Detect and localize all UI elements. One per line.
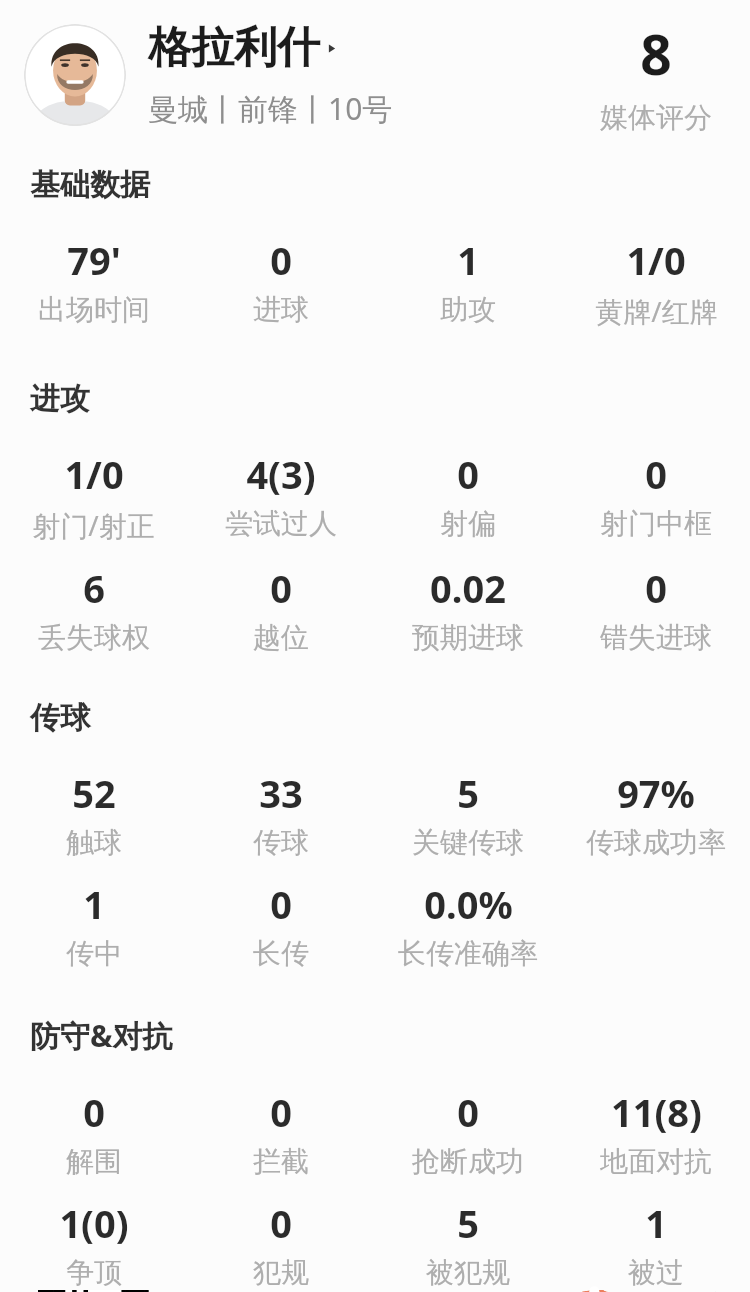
staticText: 射门/射正 xyxy=(32,506,155,544)
button[interactable]: 0 xyxy=(187,562,374,655)
button[interactable]: 4(3) xyxy=(187,448,374,541)
staticText: 错失进球 xyxy=(600,620,712,655)
staticText: 1 xyxy=(645,1197,667,1249)
staticText: 传中 xyxy=(66,936,122,971)
button[interactable]: 球8体育 QIUBATIYU.NET xyxy=(578,1290,734,1292)
button[interactable]: 0 xyxy=(187,1197,374,1290)
button[interactable]: 52 xyxy=(0,767,187,860)
button[interactable]: 1 xyxy=(0,878,187,971)
staticText: 进攻 xyxy=(30,380,90,418)
button[interactable]: Player photo xyxy=(24,24,126,126)
staticText: 1 xyxy=(457,234,479,286)
staticText: 11(8) xyxy=(611,1086,702,1138)
button[interactable]: 97% xyxy=(562,767,750,860)
staticText: 射偏 xyxy=(440,506,496,541)
staticText: 争顶 xyxy=(66,1255,122,1290)
staticText: 预期进球 xyxy=(412,620,524,655)
staticText: 传球 xyxy=(30,699,90,737)
staticText: 出场时间 xyxy=(38,292,150,327)
staticText: 媒体评分 xyxy=(600,100,712,135)
button[interactable]: 0 xyxy=(374,448,562,541)
button[interactable]: 5 xyxy=(374,767,562,860)
button[interactable]: 1(0) xyxy=(0,1197,187,1290)
staticText: 5 xyxy=(457,1197,479,1249)
button[interactable]: 5 xyxy=(374,1197,562,1290)
button[interactable]: 0 xyxy=(187,234,374,327)
button[interactable]: 33 xyxy=(187,767,374,860)
staticText: 1 xyxy=(83,878,105,930)
staticText: 被过 xyxy=(628,1255,684,1290)
staticText: 传球成功率 xyxy=(586,825,726,860)
staticText: 0 xyxy=(457,1086,479,1138)
staticText: 4(3) xyxy=(246,448,316,500)
staticText: 犯规 xyxy=(253,1255,309,1290)
button[interactable]: QR code to download app xyxy=(38,1290,148,1292)
staticText: 79' xyxy=(67,234,121,286)
staticText: 52 xyxy=(72,767,116,819)
staticText: 0 xyxy=(457,448,479,500)
staticText: 0 xyxy=(645,448,667,500)
staticText: 长传 xyxy=(253,936,309,971)
button[interactable]: 0.0% xyxy=(374,878,562,971)
staticText: 1/0 xyxy=(626,234,686,286)
staticText: 0 xyxy=(83,1086,105,1138)
staticText: 6 xyxy=(83,562,105,614)
button[interactable]: 1 xyxy=(374,234,562,327)
staticText: 0 xyxy=(645,562,667,614)
button[interactable]: 8 xyxy=(562,16,750,135)
staticText: 黄牌/红牌 xyxy=(595,292,718,330)
staticText: 丢失球权 xyxy=(38,620,150,655)
staticText: 0 xyxy=(270,1197,292,1249)
staticText: 8 xyxy=(640,16,672,91)
staticText: 进球 xyxy=(253,292,309,327)
staticText: 抢断成功 xyxy=(412,1144,524,1179)
staticText: 基础数据 xyxy=(30,166,150,204)
button[interactable]: 1/0 xyxy=(562,234,750,330)
staticText: 被犯规 xyxy=(426,1255,510,1290)
staticText: 地面对抗 xyxy=(600,1144,712,1179)
staticText: 尝试过人 xyxy=(225,506,337,541)
staticText: 射门中框 xyxy=(600,506,712,541)
staticText: 触球 xyxy=(66,825,122,860)
staticText: 拦截 xyxy=(253,1144,309,1179)
staticText: 传球 xyxy=(253,825,309,860)
staticText: 0 xyxy=(270,562,292,614)
button[interactable]: 0 xyxy=(562,448,750,541)
button[interactable]: 0 xyxy=(374,1086,562,1179)
button[interactable]: 0.02 xyxy=(374,562,562,655)
staticText: 长传准确率 xyxy=(398,936,538,971)
button[interactable]: 0 xyxy=(187,878,374,971)
staticText: 曼城丨前锋丨10号 xyxy=(148,88,393,129)
staticText: 助攻 xyxy=(440,292,496,327)
button[interactable]: 0 xyxy=(0,1086,187,1179)
staticText: 0 xyxy=(270,234,292,286)
staticText: 1(0) xyxy=(59,1197,129,1249)
button[interactable]: 1/0 xyxy=(0,448,187,544)
staticText: 0 xyxy=(270,1086,292,1138)
staticText: 5 xyxy=(457,767,479,819)
button[interactable]: 0 xyxy=(187,1086,374,1179)
staticText: 97% xyxy=(617,767,695,819)
button[interactable]: 6 xyxy=(0,562,187,655)
staticText: 0.02 xyxy=(430,562,506,614)
button[interactable]: 格拉利什 xyxy=(148,21,562,129)
staticText: 1/0 xyxy=(64,448,124,500)
button[interactable]: 1 xyxy=(562,1197,750,1290)
staticText: 越位 xyxy=(253,620,309,655)
staticText: 防守&对抗 xyxy=(30,1015,173,1056)
button[interactable]: 0 xyxy=(562,562,750,655)
button[interactable]: 11(8) xyxy=(562,1086,750,1179)
staticText: 0.0% xyxy=(424,878,513,930)
staticText: 关键传球 xyxy=(412,825,524,860)
staticText: 33 xyxy=(259,767,303,819)
button[interactable]: 79' xyxy=(0,234,187,327)
staticText: 解围 xyxy=(66,1144,122,1179)
staticText: 格拉利什 xyxy=(148,21,320,75)
staticText: 0 xyxy=(270,878,292,930)
